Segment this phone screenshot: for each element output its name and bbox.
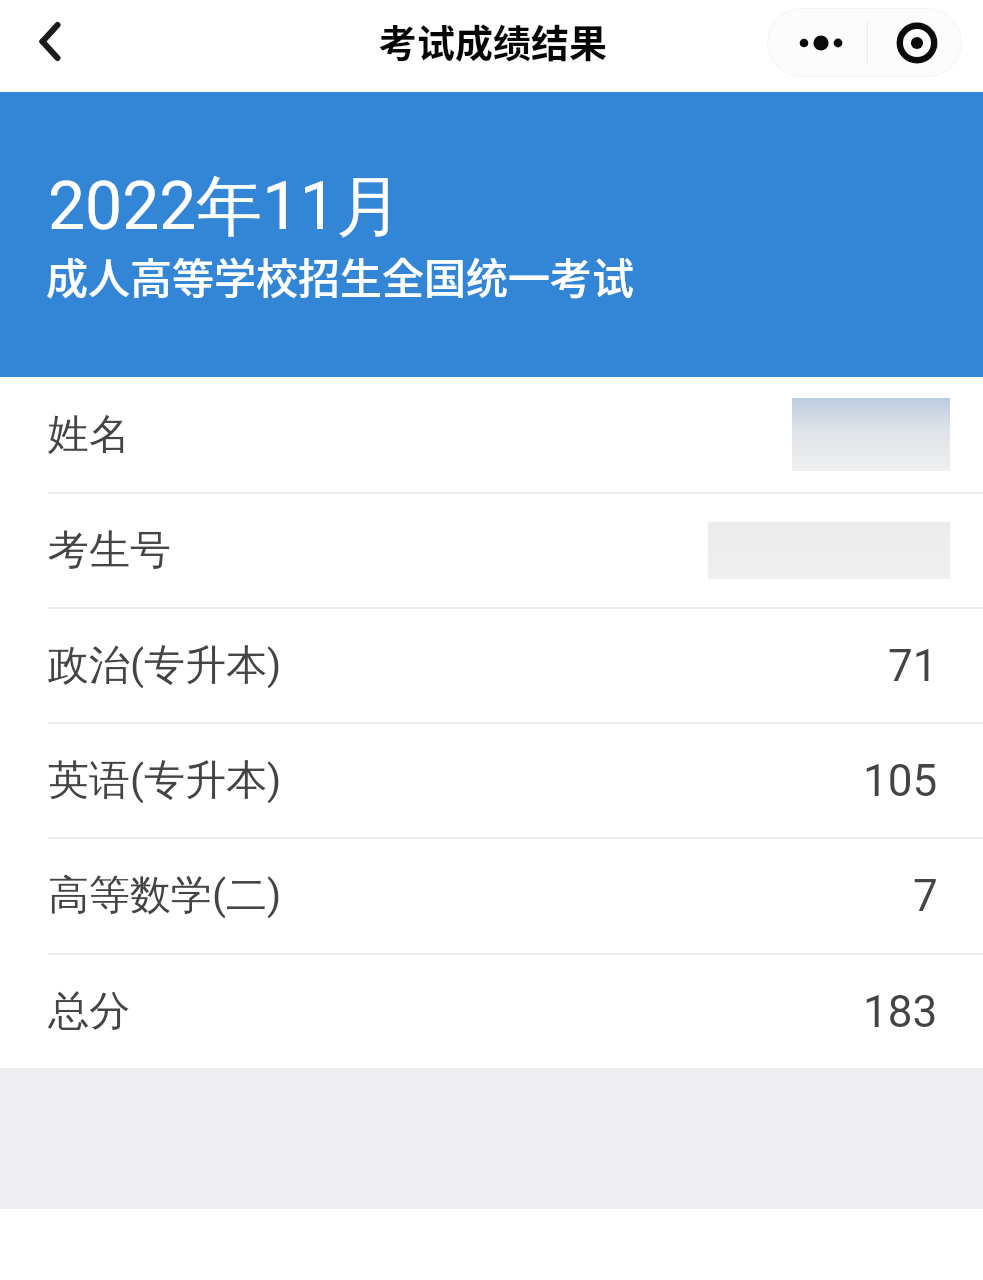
button[interactable]: 总分 bbox=[0, 955, 983, 1068]
button[interactable]: 政治(专升本) bbox=[0, 609, 983, 722]
staticText: 2022年11月 bbox=[48, 165, 403, 248]
staticText: 考试成绩结果 bbox=[379, 13, 608, 68]
staticText: 考生号 bbox=[48, 525, 171, 577]
button[interactable]: 姓名 bbox=[0, 377, 983, 492]
button[interactable]: 英语(专升本) bbox=[0, 724, 983, 837]
staticText: 姓名 bbox=[48, 409, 130, 461]
staticText: 高等数学(二) bbox=[48, 870, 282, 922]
button[interactable]: 高等数学(二) bbox=[0, 839, 983, 953]
staticText: 7 bbox=[913, 870, 938, 922]
button[interactable]: Close mini program bbox=[868, 8, 962, 77]
staticText: 105 bbox=[863, 755, 938, 807]
button[interactable]: Back bbox=[16, 12, 84, 80]
button[interactable]: 考生号 bbox=[0, 494, 983, 607]
staticText: 成人高等学校招生全国统一考试 bbox=[46, 245, 635, 306]
staticText: 183 bbox=[863, 986, 938, 1038]
staticText: 英语(专升本) bbox=[48, 755, 282, 807]
staticText: 总分 bbox=[48, 986, 130, 1038]
staticText: 71 bbox=[888, 640, 938, 692]
staticText: 政治(专升本) bbox=[48, 640, 282, 692]
button[interactable]: More options bbox=[767, 8, 867, 77]
